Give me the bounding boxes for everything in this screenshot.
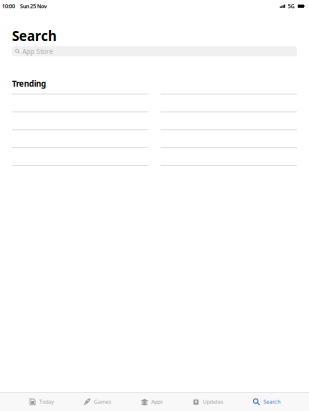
staticText: Sun 25 Nov: [20, 3, 47, 10]
staticText: Search: [263, 398, 280, 405]
button[interactable]: Search: [253, 395, 280, 409]
button[interactable]: Today: [29, 395, 54, 409]
button[interactable]: Apps: [141, 395, 163, 409]
button[interactable]: App Store: [12, 46, 297, 56]
staticText: Today: [39, 398, 54, 405]
staticText: Apps: [151, 398, 163, 405]
button[interactable]: Games: [83, 395, 112, 409]
staticText: Games: [94, 398, 112, 405]
staticText: Search: [12, 27, 57, 45]
staticText: 5G: [288, 3, 295, 10]
staticText: App Store: [22, 47, 53, 56]
staticText: Updates: [203, 398, 224, 405]
button[interactable]: Updates: [192, 395, 224, 409]
staticText: Trending: [12, 78, 46, 89]
staticText: 10:00: [2, 3, 15, 10]
